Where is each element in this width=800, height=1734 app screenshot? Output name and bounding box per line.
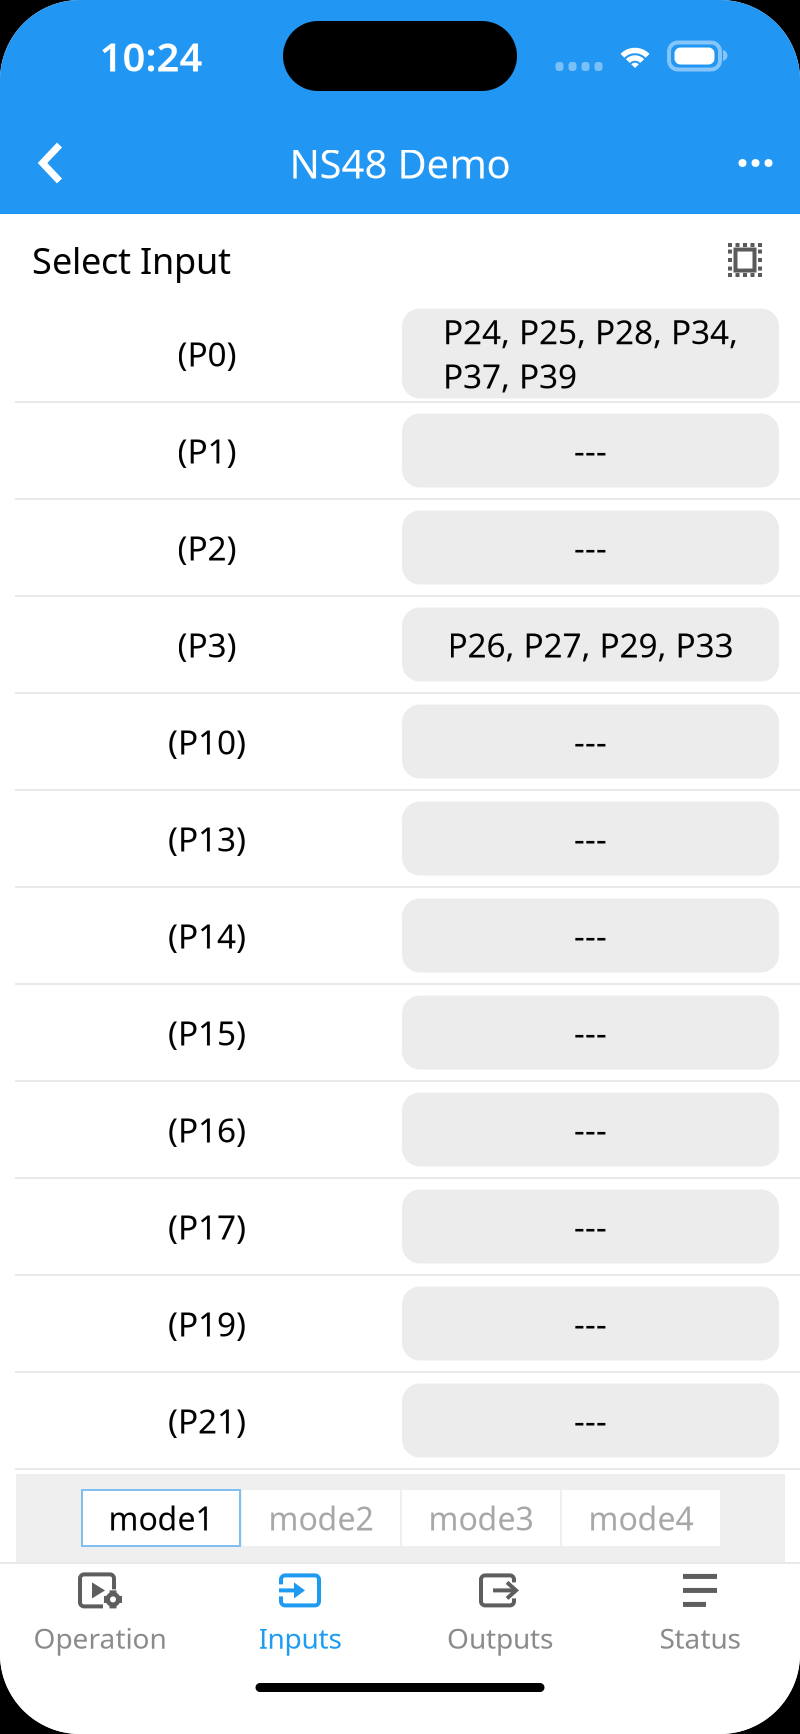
staticText: Inputs bbox=[258, 1619, 341, 1657]
staticText: Operation bbox=[33, 1619, 166, 1657]
staticText: --- bbox=[574, 816, 607, 861]
button[interactable]: mode4 bbox=[561, 1474, 721, 1562]
button[interactable]: (P10) bbox=[0, 694, 800, 789]
staticText: mode2 bbox=[268, 1497, 373, 1539]
button[interactable]: More options bbox=[696, 112, 800, 214]
staticText: --- bbox=[574, 1204, 607, 1249]
button[interactable]: Select all inputs bbox=[712, 227, 778, 293]
staticText: --- bbox=[574, 913, 607, 958]
button[interactable]: (P1) bbox=[0, 403, 800, 498]
staticText: --- bbox=[574, 1107, 607, 1152]
button[interactable]: Operation bbox=[0, 1564, 200, 1660]
staticText: Select Input bbox=[32, 236, 231, 284]
staticText: (P13) bbox=[168, 816, 246, 861]
button[interactable]: (P13) bbox=[0, 791, 800, 886]
button[interactable]: Status bbox=[600, 1564, 800, 1660]
staticText: (P14) bbox=[168, 913, 246, 958]
button[interactable]: (P19) bbox=[0, 1276, 800, 1371]
button[interactable]: mode3 bbox=[401, 1474, 561, 1562]
button[interactable]: (P15) bbox=[0, 985, 800, 1080]
staticText: (P2) bbox=[177, 525, 236, 570]
staticText: (P10) bbox=[168, 719, 246, 764]
staticText: Status bbox=[659, 1619, 740, 1657]
staticText: --- bbox=[574, 1301, 607, 1346]
staticText: (P16) bbox=[168, 1107, 246, 1152]
staticText: mode3 bbox=[428, 1497, 533, 1539]
staticText: 10:24 bbox=[99, 29, 202, 82]
staticText: P24, P25, P28, P34, P37, P39 bbox=[443, 309, 738, 398]
button[interactable]: mode2 bbox=[241, 1474, 401, 1562]
button[interactable]: (P3) bbox=[0, 597, 800, 692]
button[interactable]: Outputs bbox=[400, 1564, 600, 1660]
staticText: --- bbox=[574, 428, 607, 473]
staticText: (P0) bbox=[177, 331, 236, 376]
button[interactable]: Back bbox=[0, 112, 104, 214]
button[interactable]: mode1 bbox=[81, 1474, 241, 1562]
staticText: (P15) bbox=[168, 1010, 246, 1055]
staticText: (P19) bbox=[168, 1301, 246, 1346]
button[interactable]: (P16) bbox=[0, 1082, 800, 1177]
staticText: NS48 Demo bbox=[289, 136, 510, 189]
button[interactable]: (P14) bbox=[0, 888, 800, 983]
staticText: mode4 bbox=[588, 1497, 693, 1539]
staticText: Outputs bbox=[447, 1619, 553, 1657]
staticText: --- bbox=[574, 1010, 607, 1055]
staticText: (P3) bbox=[177, 622, 236, 667]
staticText: (P21) bbox=[168, 1398, 246, 1443]
button[interactable]: Inputs bbox=[200, 1564, 400, 1660]
staticText: (P1) bbox=[177, 428, 236, 473]
staticText: --- bbox=[574, 719, 607, 764]
staticText: mode1 bbox=[108, 1497, 213, 1539]
button[interactable]: (P21) bbox=[0, 1373, 800, 1468]
staticText: (P17) bbox=[168, 1204, 246, 1249]
staticText: --- bbox=[574, 525, 607, 570]
staticText: P26, P27, P29, P33 bbox=[447, 622, 733, 667]
staticText: --- bbox=[574, 1398, 607, 1443]
button[interactable]: (P2) bbox=[0, 500, 800, 595]
button[interactable]: (P17) bbox=[0, 1179, 800, 1274]
button[interactable]: (P0) bbox=[0, 306, 800, 401]
